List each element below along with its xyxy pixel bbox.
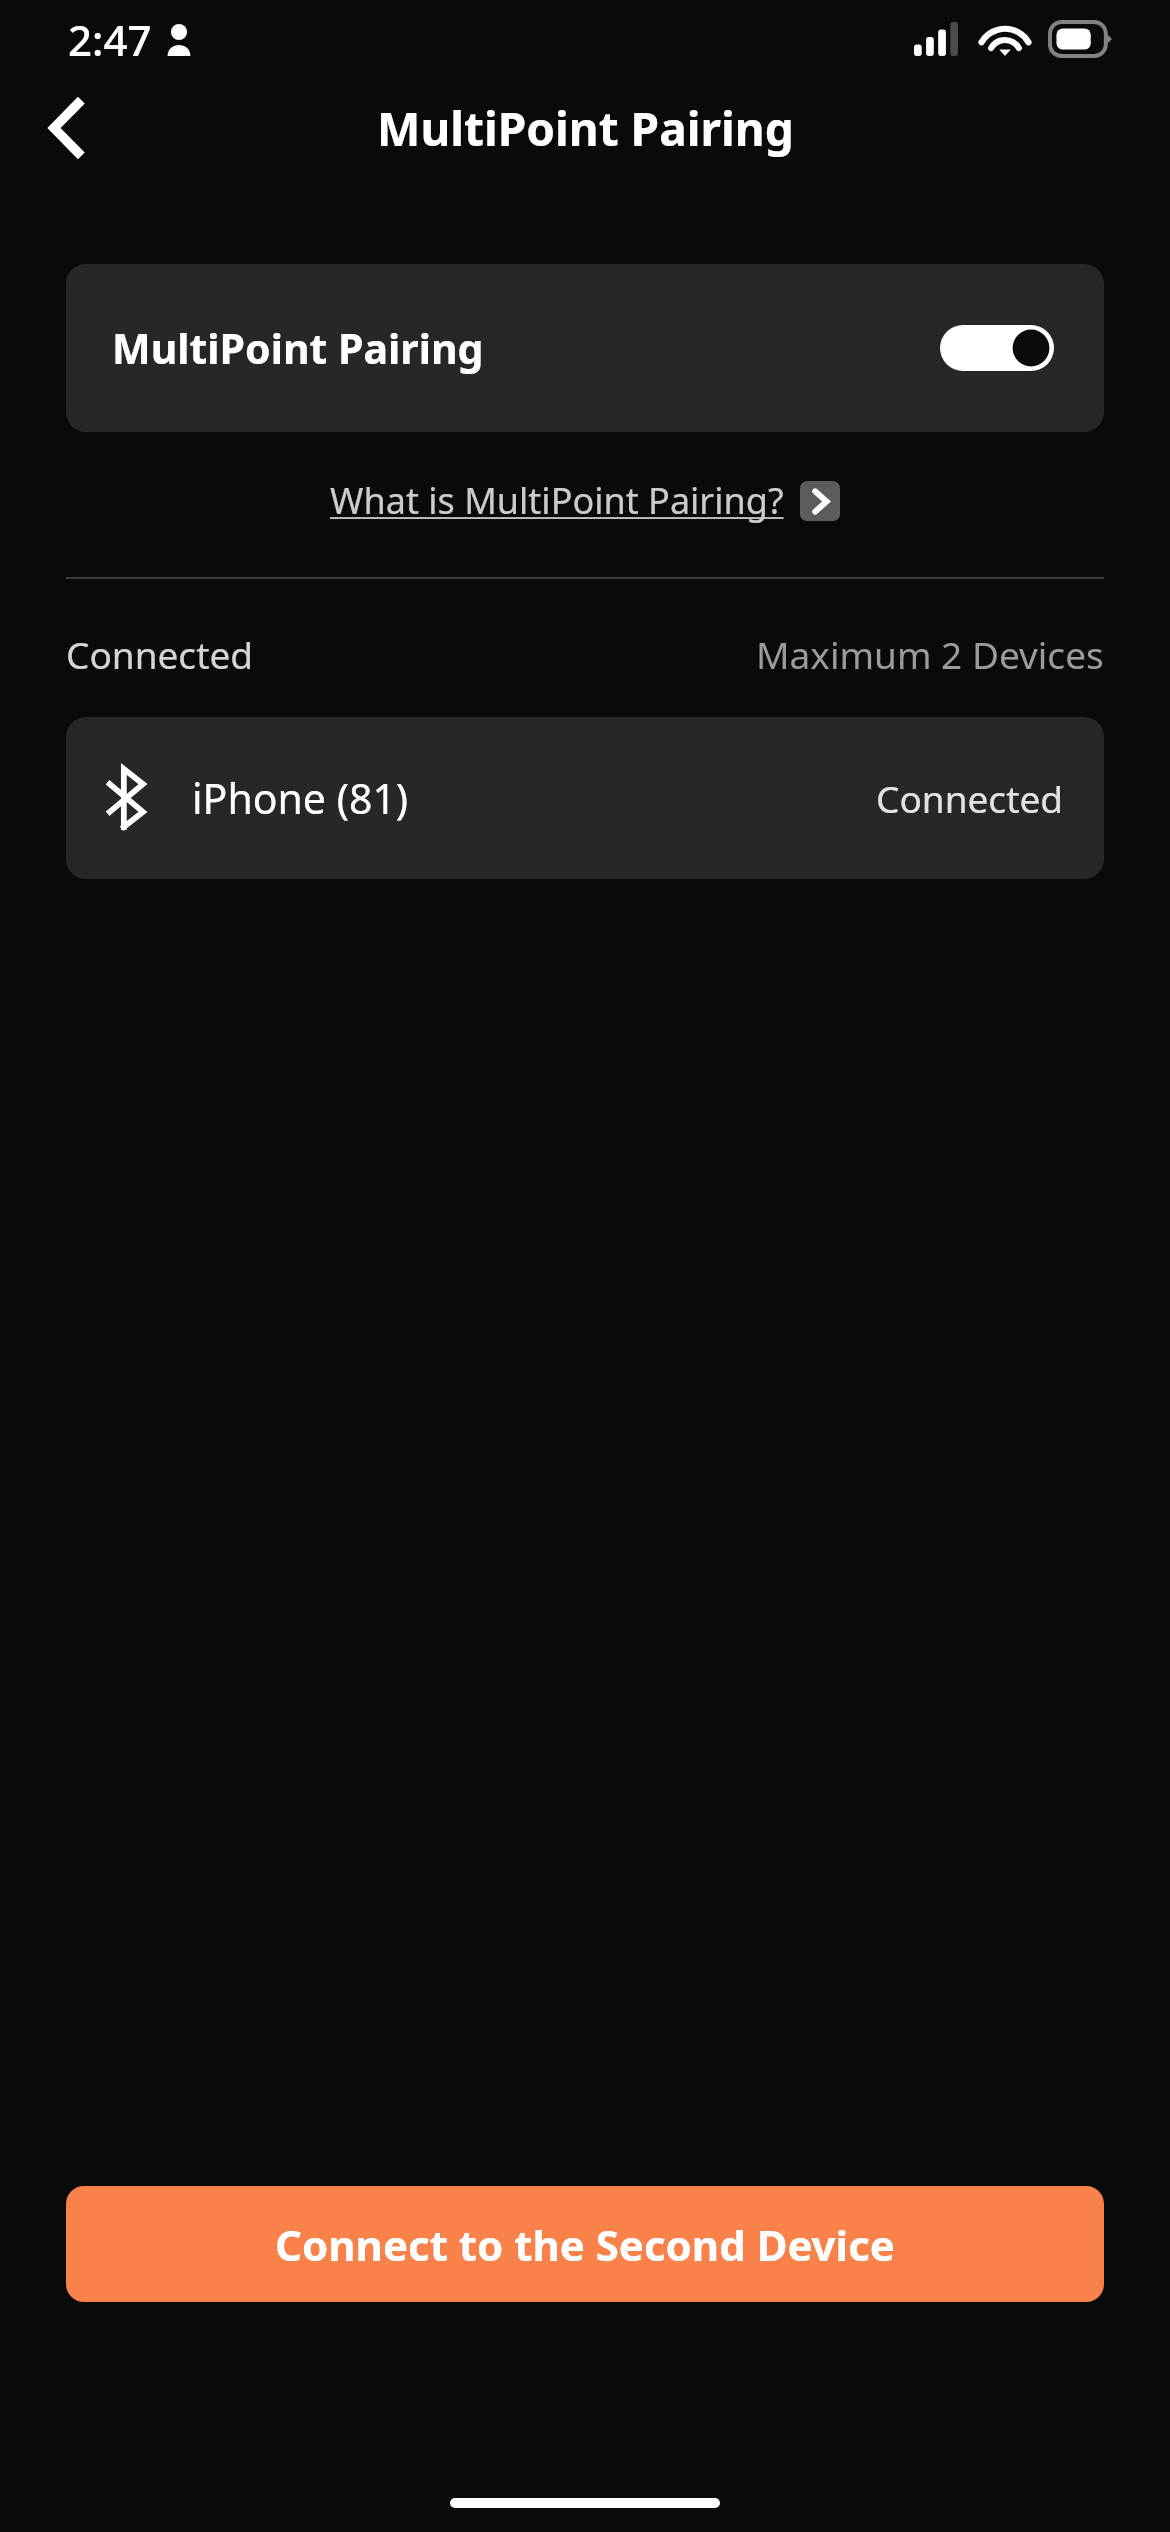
- staticText: Maximum 2 Devices: [756, 629, 1104, 679]
- button[interactable]: Back: [26, 88, 106, 168]
- staticText: Connect to the Second Device: [275, 2216, 895, 2273]
- staticText: Connected: [876, 773, 1064, 823]
- staticText: iPhone (81): [192, 770, 409, 826]
- button[interactable]: iPhone (81): [66, 717, 1104, 879]
- staticText: Connected: [66, 629, 254, 679]
- button[interactable]: What is MultiPoint Pairing?: [330, 476, 840, 525]
- staticText: What is MultiPoint Pairing?: [330, 476, 784, 525]
- staticText: MultiPoint Pairing: [377, 97, 794, 160]
- button[interactable]: Connect to the Second Device: [66, 2186, 1104, 2302]
- staticText: MultiPoint Pairing: [112, 320, 484, 376]
- staticText: 2:47: [68, 11, 152, 68]
- button[interactable]: MultiPoint Pairing: [66, 264, 1104, 432]
